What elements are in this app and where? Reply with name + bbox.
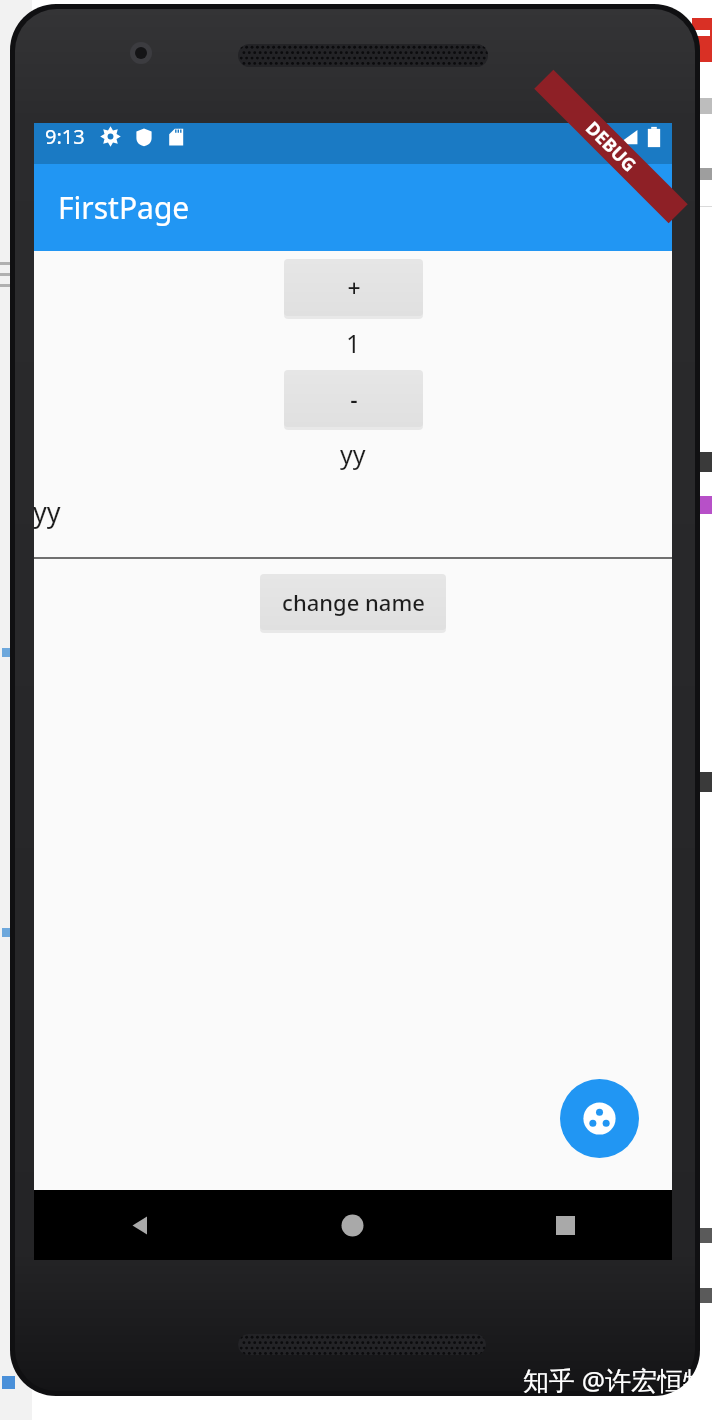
staticText: change name <box>282 587 425 617</box>
staticText: FirstPage <box>58 187 190 228</box>
button[interactable]: Add <box>560 1079 639 1158</box>
button[interactable]: + <box>284 259 423 316</box>
staticText: + <box>347 272 361 303</box>
button[interactable]: Recents <box>459 1190 672 1260</box>
button[interactable]: Home <box>246 1190 459 1260</box>
staticText: 1 <box>346 326 361 360</box>
staticText: 9:13 <box>45 123 85 150</box>
staticText: DEBUG <box>580 116 642 177</box>
staticText: 知乎 @许宏恒特 <box>523 1362 710 1398</box>
staticText: yy <box>340 437 366 471</box>
staticText: - <box>350 383 358 414</box>
button[interactable]: Back <box>34 1190 246 1260</box>
staticText: yy <box>33 493 61 530</box>
button[interactable]: - <box>284 370 423 427</box>
button[interactable]: change name <box>260 574 446 630</box>
